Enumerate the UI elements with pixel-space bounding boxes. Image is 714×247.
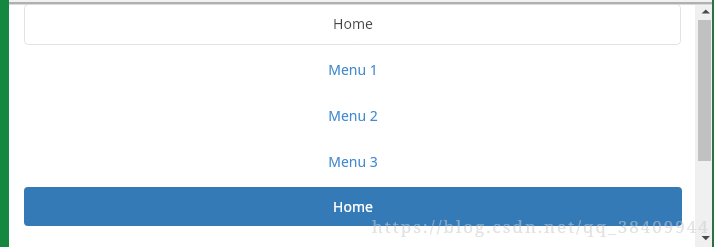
button[interactable]: Scroll down [695, 228, 712, 247]
staticText: https://blog.csdn.net/qq_38409944 [372, 215, 710, 238]
staticText: Home [333, 14, 373, 33]
staticText: Menu 1 [328, 60, 378, 79]
staticText: Menu 3 [328, 152, 378, 171]
button[interactable]: Scroll up [695, 0, 712, 19]
button[interactable]: Menu 3 [9, 138, 696, 184]
button[interactable]: Home [24, 4, 681, 45]
button[interactable]: Menu 1 [9, 46, 696, 92]
button[interactable]: Home [24, 187, 682, 226]
staticText: Home [333, 197, 373, 216]
button[interactable]: Menu 2 [9, 92, 696, 138]
staticText: Menu 2 [328, 106, 378, 125]
